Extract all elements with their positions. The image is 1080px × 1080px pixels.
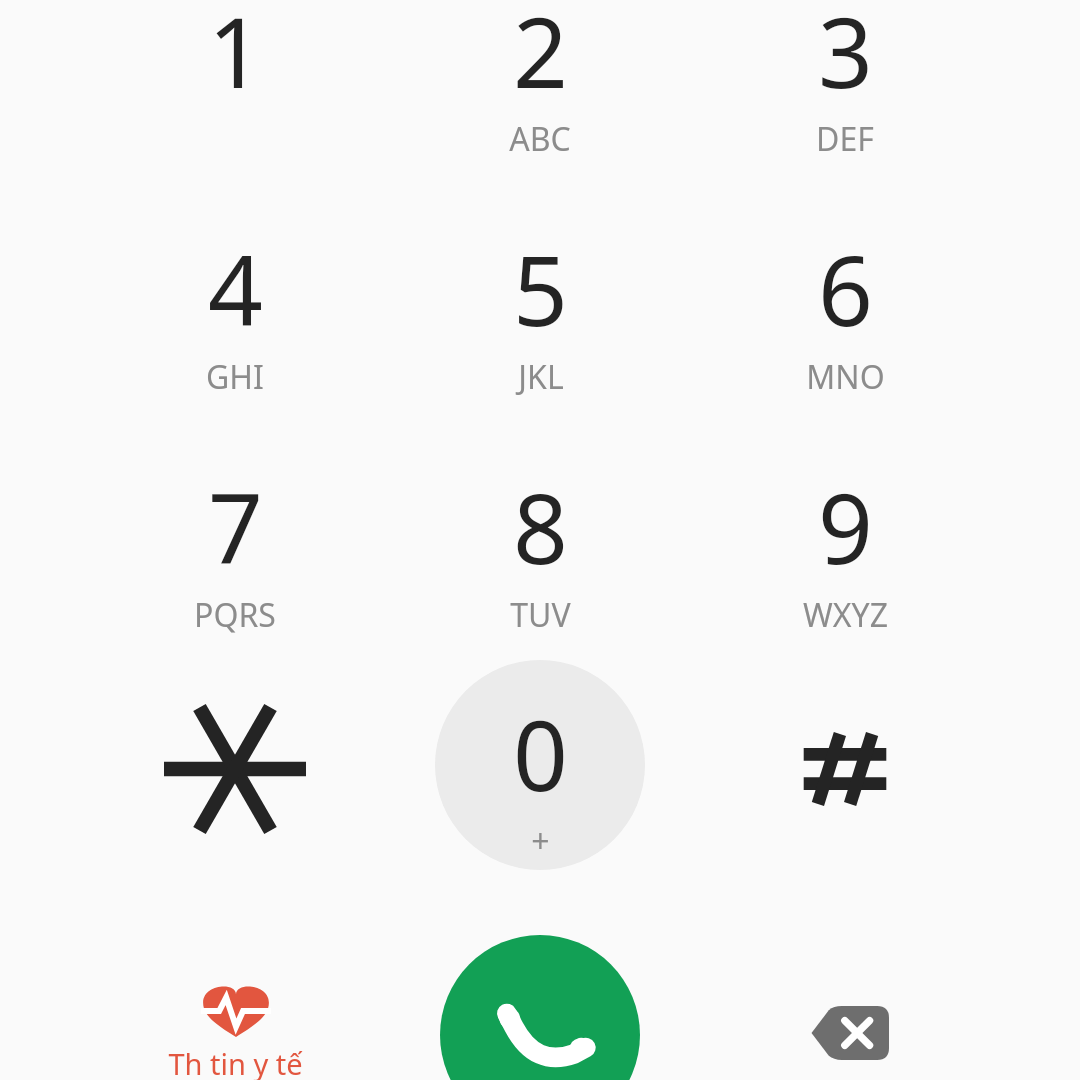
- staticText: 3: [818, 0, 873, 116]
- button[interactable]: 8: [425, 437, 655, 637]
- staticText: 7: [208, 461, 263, 592]
- button[interactable]: Th tin y tế: [125, 985, 345, 1080]
- staticText: 9: [818, 461, 873, 592]
- staticText: 6: [818, 223, 873, 354]
- button[interactable]: 9: [730, 437, 960, 637]
- button[interactable]: Pound: [745, 669, 945, 869]
- staticText: 8: [513, 461, 568, 592]
- button[interactable]: 3: [730, 0, 960, 161]
- button[interactable]: 5: [425, 199, 655, 399]
- staticText: 4: [208, 223, 263, 354]
- staticText: TUV: [510, 593, 571, 637]
- button[interactable]: 0: [435, 660, 645, 870]
- staticText: MNO: [806, 355, 885, 399]
- staticText: ABC: [509, 117, 571, 161]
- staticText: 2: [513, 0, 568, 116]
- staticText: +: [531, 819, 550, 863]
- staticText: PQRS: [194, 593, 276, 637]
- staticText: 1: [208, 0, 263, 116]
- staticText: 0: [513, 688, 568, 819]
- staticText: DEF: [816, 117, 874, 161]
- button[interactable]: Star: [135, 669, 335, 869]
- button[interactable]: 6: [730, 199, 960, 399]
- button[interactable]: Call: [440, 935, 640, 1080]
- button[interactable]: 4: [120, 199, 350, 399]
- button[interactable]: 2: [425, 0, 655, 161]
- button[interactable]: 1: [120, 0, 350, 161]
- staticText: GHI: [206, 355, 264, 399]
- staticText: 5: [513, 223, 568, 354]
- staticText: Th tin y tế: [168, 1044, 303, 1080]
- staticText: JKL: [518, 355, 564, 399]
- staticText: WXYZ: [803, 593, 888, 637]
- button[interactable]: Backspace: [771, 978, 921, 1080]
- button[interactable]: 7: [120, 437, 350, 637]
